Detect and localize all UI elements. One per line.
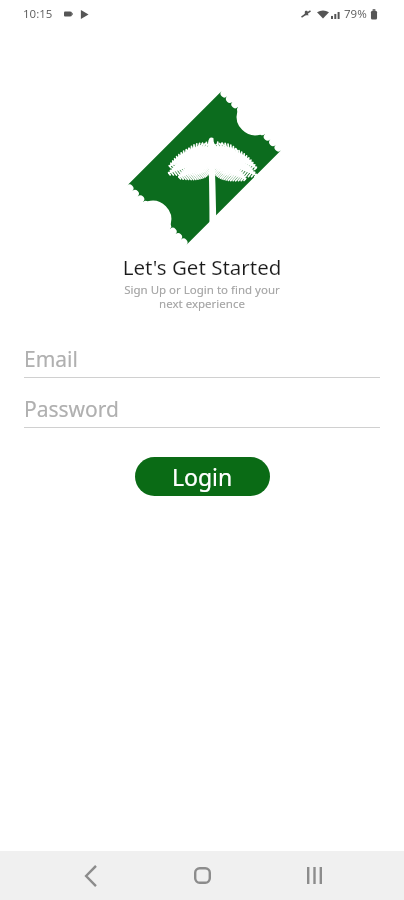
staticText: Password — [24, 395, 119, 424]
staticText: Let's Get Started — [0, 253, 404, 281]
staticText: Sign Up or Login to find your next exper… — [0, 282, 404, 312]
staticText: 79% — [344, 6, 367, 22]
staticText: Email — [24, 345, 78, 374]
button[interactable]: Recents — [246, 851, 382, 900]
button[interactable]: Login — [135, 457, 270, 496]
button[interactable]: Back — [22, 851, 158, 900]
button[interactable]: Home — [158, 851, 246, 900]
staticText: Login — [172, 461, 233, 492]
staticText: 10:15 — [23, 6, 53, 22]
